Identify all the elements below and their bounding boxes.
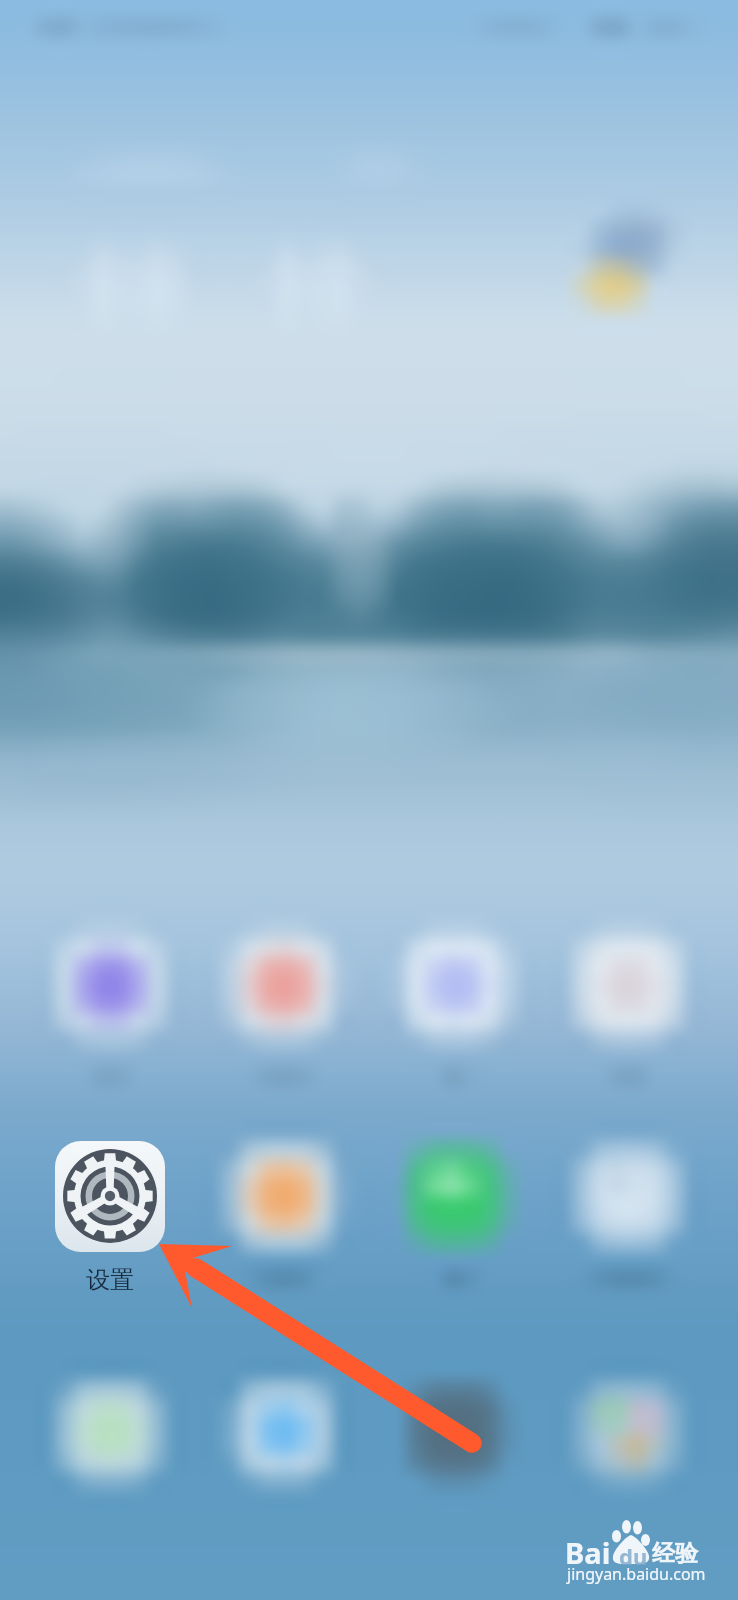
button[interactable]: 设置 <box>55 1141 165 1252</box>
staticText: Bai <box>565 1533 611 1572</box>
staticText: du <box>619 1541 648 1571</box>
staticText: 设置 <box>59 1265 161 1295</box>
staticText: 经验 <box>652 1539 698 1568</box>
staticText: jingyan.baidu.com <box>567 1563 706 1585</box>
